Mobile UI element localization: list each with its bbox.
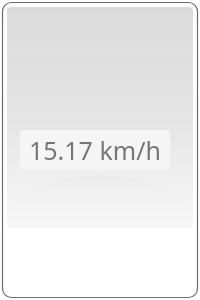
- button[interactable]: Current speed 15.17 km/h: [20, 130, 170, 170]
- staticText: 15.17 km/h: [29, 133, 161, 167]
